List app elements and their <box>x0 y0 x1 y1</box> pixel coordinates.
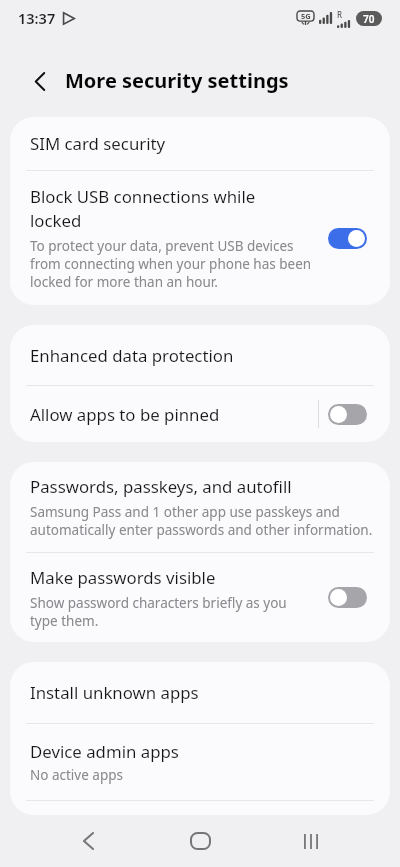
staticText: Allow apps to be pinned <box>30 403 318 426</box>
button[interactable]: Allow apps to be pinned <box>10 386 390 442</box>
staticText: No active apps <box>30 766 123 784</box>
staticText: Block USB connections while locked <box>30 185 256 232</box>
button[interactable] <box>180 821 220 861</box>
button[interactable] <box>68 821 108 861</box>
button[interactable] <box>328 228 367 249</box>
staticText: R <box>337 9 343 20</box>
button[interactable]: Passwords, passkeys, and autofill <box>10 462 390 552</box>
staticText: SIM card security <box>30 132 166 155</box>
button[interactable]: Make passwords visible <box>10 553 390 642</box>
staticText: Passwords, passkeys, and autofill <box>30 475 292 498</box>
button[interactable] <box>291 821 331 861</box>
button[interactable] <box>22 63 58 99</box>
button[interactable] <box>328 404 367 425</box>
button[interactable]: Device admin apps <box>10 724 390 800</box>
button[interactable]: Enhanced data protection <box>10 325 390 385</box>
staticText: 5G <box>301 11 311 21</box>
button[interactable]: Block USB connections while locked <box>10 171 390 305</box>
button[interactable]: SIM card security <box>10 117 390 170</box>
staticText: Make passwords visible <box>30 566 216 589</box>
staticText: Device admin apps <box>30 740 179 763</box>
staticText: Samsung Pass and 1 other app use passkey… <box>30 503 373 539</box>
staticText: Enhanced data protection <box>30 344 234 367</box>
button[interactable] <box>328 587 367 608</box>
staticText: More security settings <box>65 67 289 94</box>
button[interactable]: Install unknown apps <box>10 662 390 723</box>
staticText: Install unknown apps <box>30 681 199 704</box>
staticText: 13:37 <box>18 8 56 28</box>
staticText: To protect your data, prevent USB device… <box>30 237 312 291</box>
staticText: Show password characters briefly as you … <box>30 594 287 630</box>
staticText: 70 <box>363 12 375 26</box>
